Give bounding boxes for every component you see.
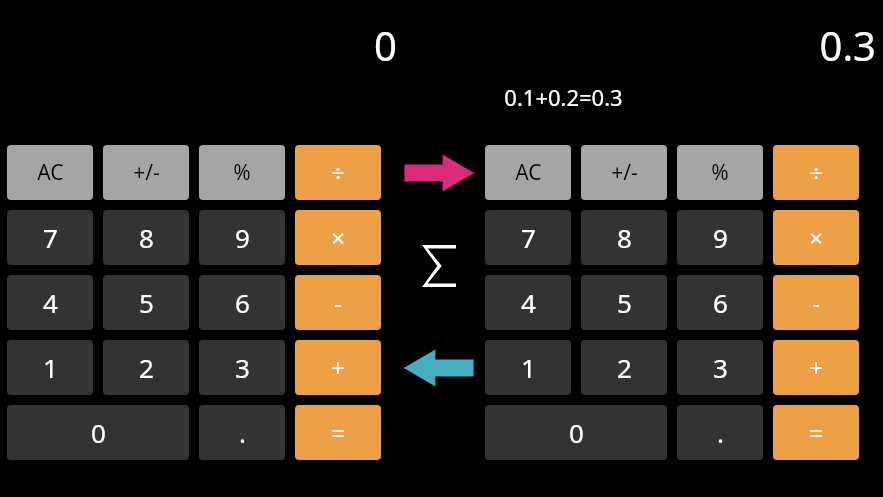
staticText: +/- <box>611 158 638 187</box>
staticText: 1 <box>521 350 536 385</box>
button[interactable]: 6 <box>199 275 285 330</box>
staticText: + <box>331 351 345 384</box>
staticText: 3 <box>235 350 250 385</box>
staticText: 9 <box>235 220 250 255</box>
button[interactable]: Divide <box>295 145 381 200</box>
staticText: 7 <box>521 220 536 255</box>
button[interactable]: % <box>199 145 285 200</box>
staticText: × <box>331 221 345 254</box>
button[interactable]: Divide <box>773 145 859 200</box>
button[interactable]: 9 <box>199 210 285 265</box>
button[interactable]: Subtract <box>773 275 859 330</box>
staticText: 4 <box>43 285 58 320</box>
staticText: 0 <box>569 415 584 450</box>
staticText: 0 <box>374 18 397 70</box>
button[interactable]: Sum <box>403 238 475 294</box>
staticText: 1 <box>43 350 58 385</box>
button[interactable]: 2 <box>103 340 189 395</box>
staticText: = <box>809 416 823 449</box>
button[interactable]: 1 <box>485 340 571 395</box>
button[interactable]: 8 <box>581 210 667 265</box>
button[interactable]: Add <box>295 340 381 395</box>
button[interactable]: +/- <box>581 145 667 200</box>
staticText: - <box>334 286 342 319</box>
staticText: + <box>809 351 823 384</box>
button[interactable]: 3 <box>677 340 763 395</box>
staticText: 0.3 <box>819 18 876 70</box>
staticText: 7 <box>43 220 58 255</box>
button[interactable]: . <box>677 405 763 460</box>
staticText: 5 <box>139 285 154 320</box>
button[interactable]: Send to left calculator <box>403 347 475 389</box>
button[interactable]: 0 <box>485 405 667 460</box>
button[interactable]: 7 <box>485 210 571 265</box>
staticText: 0 <box>91 415 106 450</box>
staticText: 8 <box>139 220 154 255</box>
staticText: +/- <box>133 158 160 187</box>
staticText: 3 <box>713 350 728 385</box>
staticText: . <box>717 415 724 450</box>
staticText: 6 <box>235 285 250 320</box>
staticText: 2 <box>617 350 632 385</box>
staticText: = <box>331 416 345 449</box>
staticText: 2 <box>139 350 154 385</box>
button[interactable]: 5 <box>581 275 667 330</box>
button[interactable]: Send to right calculator <box>403 152 475 194</box>
button[interactable]: Subtract <box>295 275 381 330</box>
button[interactable]: Multiply <box>295 210 381 265</box>
staticText: 8 <box>617 220 632 255</box>
staticText: 4 <box>521 285 536 320</box>
button[interactable]: 7 <box>7 210 93 265</box>
staticText: 0.1+0.2=0.3 <box>504 82 623 112</box>
button[interactable]: 2 <box>581 340 667 395</box>
button[interactable]: +/- <box>103 145 189 200</box>
button[interactable]: Equals <box>295 405 381 460</box>
button[interactable]: AC <box>7 145 93 200</box>
staticText: % <box>711 158 729 187</box>
button[interactable]: 4 <box>485 275 571 330</box>
staticText: - <box>812 286 820 319</box>
button[interactable]: 0 <box>7 405 189 460</box>
button[interactable]: Add <box>773 340 859 395</box>
button[interactable]: 4 <box>7 275 93 330</box>
staticText: ÷ <box>331 156 345 189</box>
staticText: AC <box>515 158 542 187</box>
button[interactable]: . <box>199 405 285 460</box>
staticText: % <box>233 158 251 187</box>
staticText: ÷ <box>809 156 823 189</box>
button[interactable]: 6 <box>677 275 763 330</box>
button[interactable]: 5 <box>103 275 189 330</box>
button[interactable]: AC <box>485 145 571 200</box>
button[interactable]: 8 <box>103 210 189 265</box>
staticText: 9 <box>713 220 728 255</box>
staticText: 5 <box>617 285 632 320</box>
button[interactable]: Multiply <box>773 210 859 265</box>
button[interactable]: % <box>677 145 763 200</box>
button[interactable]: Equals <box>773 405 859 460</box>
staticText: 6 <box>713 285 728 320</box>
staticText: AC <box>37 158 64 187</box>
staticText: . <box>239 415 246 450</box>
button[interactable]: 9 <box>677 210 763 265</box>
button[interactable]: 3 <box>199 340 285 395</box>
button[interactable]: 1 <box>7 340 93 395</box>
staticText: × <box>809 221 823 254</box>
